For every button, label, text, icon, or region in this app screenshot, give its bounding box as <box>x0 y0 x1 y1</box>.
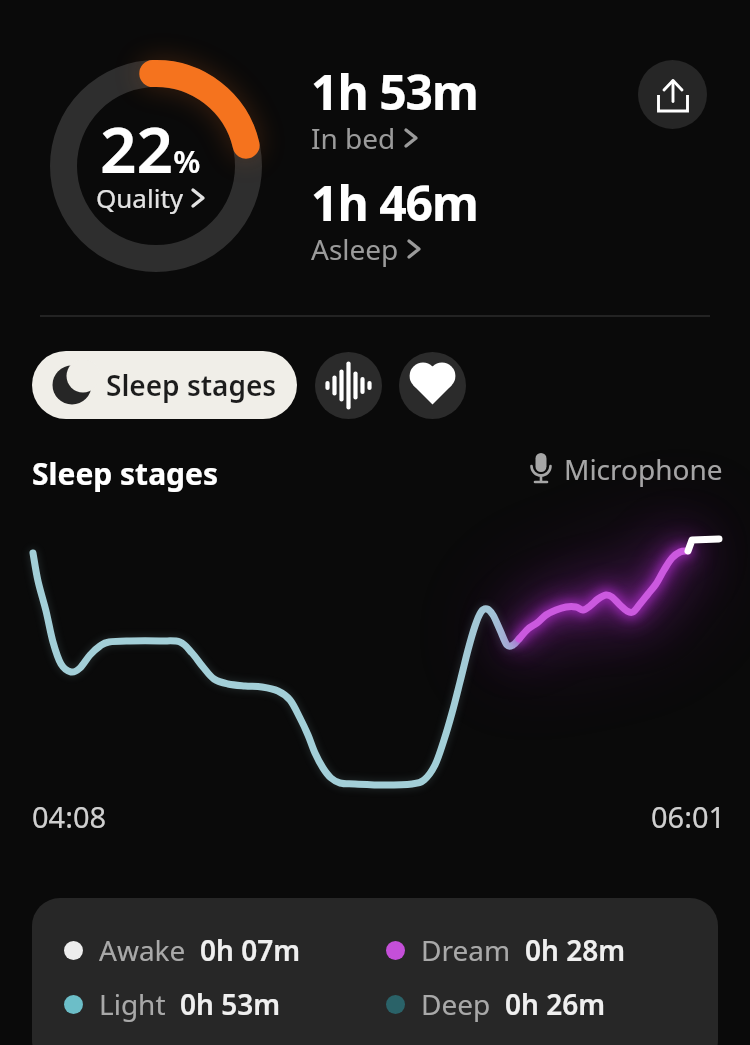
staticText: Microphone <box>564 450 723 488</box>
staticText: Sleep stages <box>32 453 219 494</box>
button[interactable]: Sleep stages <box>32 351 297 419</box>
staticText: 0h 53m <box>180 985 281 1023</box>
button[interactable]: Asleep <box>311 230 420 268</box>
staticText: 04:08 <box>32 797 107 836</box>
staticText: 0h 28m <box>525 931 626 969</box>
button[interactable]: In bed <box>311 119 417 157</box>
button[interactable] <box>638 60 707 129</box>
staticText: Awake <box>99 931 186 969</box>
staticText: 22% <box>100 105 201 192</box>
staticText: Quality <box>96 180 184 215</box>
staticText: Deep <box>421 985 491 1023</box>
staticText: Asleep <box>311 230 399 268</box>
button[interactable]: Deep <box>386 985 606 1023</box>
staticText: In bed <box>311 119 396 157</box>
staticText: Dream <box>421 931 511 969</box>
staticText: 1h 46m <box>311 170 478 235</box>
button[interactable] <box>315 352 382 419</box>
button[interactable]: Quality <box>96 180 204 215</box>
staticText: Sleep stages <box>106 366 277 404</box>
button[interactable]: Microphone <box>530 450 723 488</box>
staticText: 1h 53m <box>311 59 478 124</box>
button[interactable]: Awake <box>64 931 301 969</box>
button[interactable] <box>399 352 466 419</box>
button[interactable]: Light <box>64 985 281 1023</box>
button[interactable]: Dream <box>386 931 626 969</box>
staticText: 0h 07m <box>200 931 301 969</box>
staticText: 0h 26m <box>505 985 606 1023</box>
staticText: Light <box>99 985 166 1023</box>
staticText: 06:01 <box>651 797 726 836</box>
